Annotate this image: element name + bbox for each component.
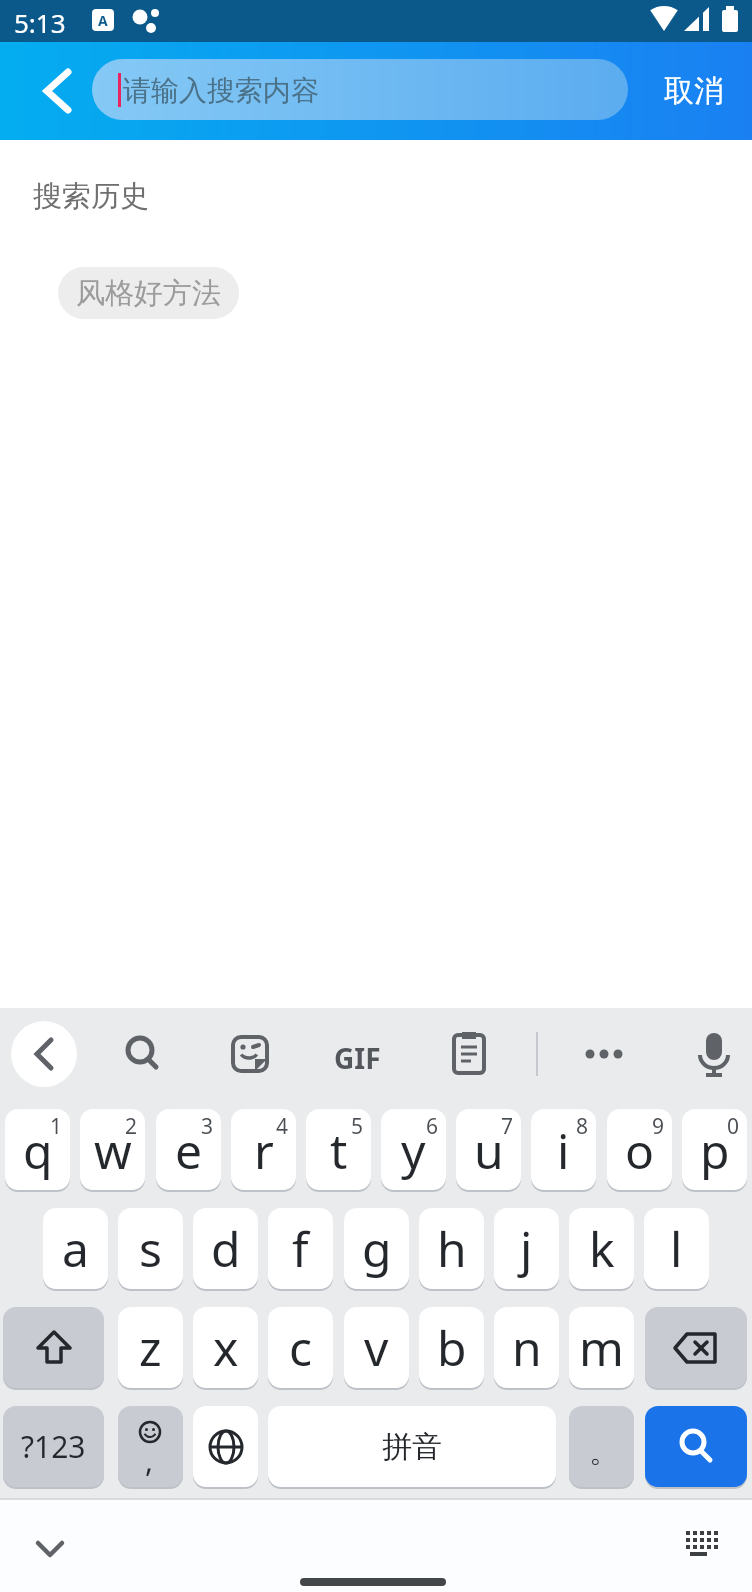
button[interactable] — [0, 42, 92, 140]
staticText: 9 — [652, 1112, 665, 1141]
staticText: d — [211, 1216, 241, 1281]
staticText: z — [139, 1315, 162, 1380]
button[interactable]: l — [644, 1208, 709, 1289]
button[interactable]: c — [268, 1307, 333, 1388]
staticText: ?123 — [21, 1426, 86, 1467]
button[interactable]: 请输入搜索内容 — [92, 59, 628, 120]
staticText: s — [139, 1216, 162, 1281]
staticText: 7 — [501, 1112, 514, 1141]
staticText: 拼音 — [382, 1428, 442, 1466]
button[interactable]: v — [344, 1307, 409, 1388]
button[interactable]: ?123 — [3, 1406, 104, 1487]
staticText: c — [289, 1315, 313, 1380]
staticText: j — [520, 1216, 533, 1281]
staticText: k — [589, 1216, 615, 1281]
button[interactable]: x — [193, 1307, 258, 1388]
staticText: 取消 — [664, 72, 724, 110]
button[interactable] — [11, 1021, 77, 1087]
staticText: e — [175, 1118, 203, 1183]
staticText: 2 — [125, 1112, 138, 1141]
button[interactable]: z — [118, 1307, 183, 1388]
staticText: u — [474, 1118, 504, 1183]
staticText: n — [512, 1315, 542, 1380]
staticText: t — [330, 1118, 348, 1183]
staticText: r — [254, 1118, 274, 1183]
staticText: m — [579, 1315, 624, 1380]
button[interactable]: j — [494, 1208, 559, 1289]
staticText: 3 — [201, 1112, 214, 1141]
staticText: 0 — [727, 1112, 740, 1141]
staticText: 搜索历史 — [33, 178, 149, 215]
staticText: 5:13 — [14, 5, 66, 40]
staticText: l — [670, 1216, 683, 1281]
button[interactable]: , — [118, 1406, 183, 1487]
button[interactable]: i — [531, 1109, 596, 1190]
button[interactable]: n — [494, 1307, 559, 1388]
staticText: 请输入搜索内容 — [123, 73, 319, 108]
staticText: 风格好方法 — [76, 275, 221, 312]
staticText: a — [62, 1216, 89, 1281]
button[interactable]: y — [381, 1109, 446, 1190]
button[interactable]: h — [419, 1208, 484, 1289]
staticText: v — [364, 1315, 389, 1380]
staticText: b — [437, 1315, 467, 1380]
staticText: p — [700, 1118, 730, 1183]
staticText: 6 — [426, 1112, 439, 1141]
staticText: 5 — [351, 1112, 364, 1141]
staticText: o — [625, 1118, 655, 1183]
button[interactable] — [193, 1406, 258, 1487]
button[interactable]: 拼音 — [268, 1406, 556, 1487]
button[interactable]: f — [268, 1208, 333, 1289]
staticText: 8 — [576, 1112, 589, 1141]
staticText: 1 — [50, 1112, 63, 1141]
button[interactable]: t — [306, 1109, 371, 1190]
button[interactable]: o — [607, 1109, 672, 1190]
staticText: f — [292, 1216, 309, 1281]
button[interactable]: s — [118, 1208, 183, 1289]
button[interactable]: u — [456, 1109, 521, 1190]
staticText: w — [94, 1118, 132, 1183]
button[interactable]: m — [569, 1307, 634, 1388]
button[interactable]: q — [5, 1109, 70, 1190]
staticText: GIF — [334, 1039, 381, 1077]
button[interactable]: b — [419, 1307, 484, 1388]
staticText: A — [98, 11, 108, 30]
staticText: q — [23, 1118, 53, 1183]
button[interactable] — [3, 1307, 104, 1388]
button[interactable]: r — [231, 1109, 296, 1190]
staticText: y — [401, 1118, 426, 1183]
button[interactable]: 风格好方法 — [58, 267, 239, 319]
button[interactable]: a — [43, 1208, 108, 1289]
staticText: h — [437, 1216, 467, 1281]
button[interactable] — [645, 1406, 747, 1487]
staticText: i — [557, 1118, 570, 1183]
button[interactable]: k — [569, 1208, 634, 1289]
button[interactable]: e — [156, 1109, 221, 1190]
staticText: 4 — [276, 1112, 289, 1141]
staticText: , — [145, 1440, 154, 1481]
button[interactable]: d — [193, 1208, 258, 1289]
button[interactable]: p — [682, 1109, 747, 1190]
button[interactable]: w — [80, 1109, 145, 1190]
staticText: 。 — [589, 1433, 619, 1471]
staticText: x — [213, 1315, 239, 1380]
button[interactable] — [645, 1307, 747, 1388]
button[interactable]: 取消 — [664, 72, 724, 110]
staticText: g — [362, 1216, 392, 1281]
button[interactable]: g — [344, 1208, 409, 1289]
button[interactable]: 。 — [569, 1406, 634, 1487]
